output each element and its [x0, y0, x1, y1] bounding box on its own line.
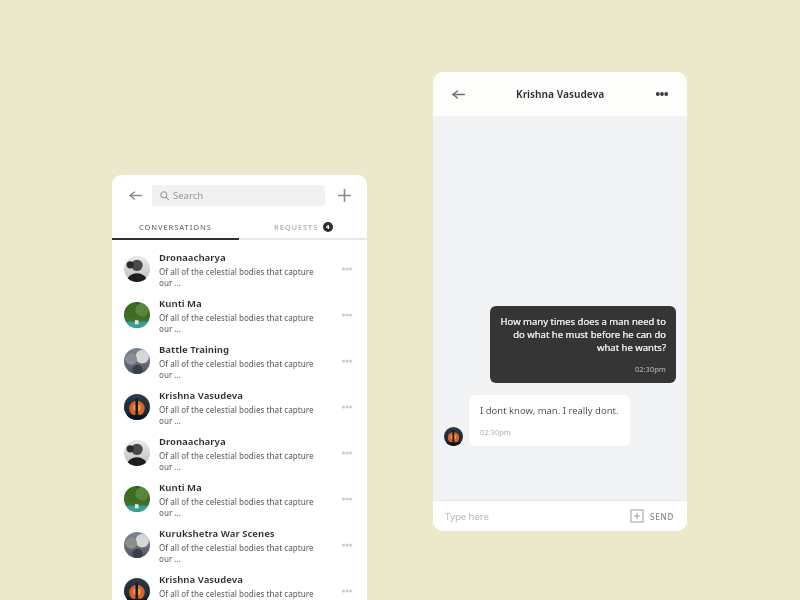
- button[interactable]: More options: [339, 445, 355, 461]
- staticText: CONVERSATIONS: [139, 222, 212, 232]
- staticText: Of all of the celestial bodies that capt…: [159, 542, 335, 564]
- staticText: Search: [173, 189, 204, 202]
- button[interactable]: CONVERSATIONS: [112, 215, 239, 238]
- button[interactable]: More options: [339, 399, 355, 415]
- staticText: Kunti Ma: [159, 297, 202, 310]
- staticText: 4: [326, 223, 330, 231]
- staticText: 02:30pm: [635, 364, 666, 374]
- staticText: Of all of the celestial bodies that capt…: [159, 588, 335, 600]
- staticText: Krishna Vasudeva: [159, 573, 243, 586]
- staticText: Of all of the celestial bodies that capt…: [159, 496, 335, 518]
- button[interactable]: Kunti Ma: [112, 292, 367, 338]
- button[interactable]: Attach: [631, 510, 643, 522]
- staticText: Of all of the celestial bodies that capt…: [159, 312, 335, 334]
- button[interactable]: How many times does a man need to do wha…: [490, 306, 676, 383]
- button[interactable]: Dronaacharya: [112, 430, 367, 476]
- button[interactable]: Krishna Vasudeva: [112, 384, 367, 430]
- button[interactable]: More options: [651, 83, 673, 105]
- button[interactable]: New conversation: [333, 184, 355, 206]
- staticText: Type here: [445, 510, 489, 523]
- button[interactable]: REQUESTS: [239, 215, 367, 238]
- staticText: SEND: [650, 511, 675, 522]
- button[interactable]: More options: [339, 537, 355, 553]
- staticText: Dronaacharya: [159, 251, 226, 264]
- button[interactable]: Back: [124, 184, 146, 206]
- button[interactable]: SEND: [650, 511, 675, 522]
- staticText: Dronaacharya: [159, 435, 226, 448]
- staticText: REQUESTS: [274, 222, 319, 232]
- button[interactable]: Type here: [445, 510, 631, 523]
- staticText: Of all of the celestial bodies that capt…: [159, 266, 335, 288]
- button[interactable]: More options: [339, 261, 355, 277]
- button[interactable]: Kunti Ma: [112, 476, 367, 522]
- staticText: Kurukshetra War Scenes: [159, 527, 275, 540]
- staticText: Krishna Vasudeva: [159, 389, 243, 402]
- staticText: 02:30pm: [480, 427, 511, 437]
- button[interactable]: More options: [339, 583, 355, 599]
- staticText: Of all of the celestial bodies that capt…: [159, 404, 335, 426]
- staticText: Kunti Ma: [159, 481, 202, 494]
- button[interactable]: Battle Training: [112, 338, 367, 384]
- button[interactable]: I dont know, man. I really dont.: [469, 395, 630, 446]
- button[interactable]: Back: [447, 83, 469, 105]
- button[interactable]: Krishna Vasudeva: [112, 568, 367, 600]
- staticText: Battle Training: [159, 343, 230, 356]
- staticText: I dont know, man. I really dont.: [480, 404, 619, 417]
- button[interactable]: More options: [339, 307, 355, 323]
- button[interactable]: More options: [339, 353, 355, 369]
- button[interactable]: More options: [339, 491, 355, 507]
- staticText: Of all of the celestial bodies that capt…: [159, 358, 335, 380]
- button[interactable]: Dronaacharya: [112, 246, 367, 292]
- staticText: Krishna Vasudeva: [516, 87, 605, 101]
- staticText: Of all of the celestial bodies that capt…: [159, 450, 335, 472]
- button[interactable]: Kurukshetra War Scenes: [112, 522, 367, 568]
- button[interactable]: Search: [152, 185, 325, 206]
- staticText: How many times does a man need to do wha…: [500, 315, 666, 354]
